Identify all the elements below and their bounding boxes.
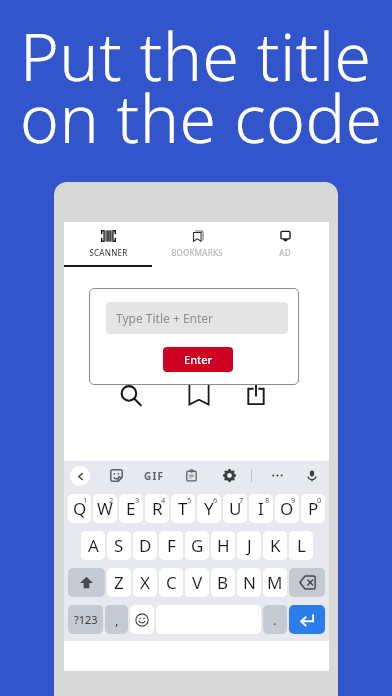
staticText: 5: [187, 495, 192, 505]
staticText: F: [167, 534, 176, 557]
staticText: Y: [204, 497, 214, 520]
staticText: E: [126, 497, 136, 520]
button[interactable]: W: [93, 494, 117, 523]
staticText: 0: [317, 495, 322, 505]
button[interactable]: M: [263, 568, 287, 597]
staticText: T: [178, 497, 188, 520]
button[interactable]: Stickers: [109, 468, 124, 483]
staticText: A: [88, 534, 99, 557]
staticText: AD: [279, 247, 291, 258]
staticText: S: [114, 534, 124, 557]
button[interactable]: H: [211, 531, 235, 560]
staticText: Put the title on the code: [20, 10, 383, 163]
button[interactable]: R: [145, 494, 169, 523]
button[interactable]: Z: [107, 568, 131, 597]
button[interactable]: Enter: [163, 347, 233, 372]
button[interactable]: K: [263, 531, 287, 560]
staticText: Z: [114, 571, 124, 594]
button[interactable]: X: [133, 568, 157, 597]
button[interactable]: Shift: [68, 568, 105, 597]
button[interactable]: N: [237, 568, 261, 597]
staticText: SCANNER: [89, 247, 128, 258]
button[interactable]: Enter: [289, 605, 325, 634]
button[interactable]: ,: [105, 605, 128, 634]
staticText: O: [280, 497, 294, 520]
button[interactable]: Voice input: [305, 469, 319, 483]
staticText: H: [217, 534, 230, 557]
staticText: D: [139, 534, 152, 557]
button[interactable]: V: [185, 568, 209, 597]
button[interactable]: F: [159, 531, 183, 560]
button[interactable]: SCANNER: [64, 222, 153, 267]
staticText: R: [152, 497, 163, 520]
staticText: W: [97, 497, 113, 520]
button[interactable]: Back: [70, 466, 90, 486]
button[interactable]: L: [289, 531, 313, 560]
button[interactable]: Q: [68, 494, 91, 523]
button[interactable]: Search: [118, 383, 144, 409]
button[interactable]: ?123: [68, 605, 103, 634]
staticText: I: [258, 497, 264, 520]
button[interactable]: Type Title + Enter: [106, 302, 288, 334]
button[interactable]: AD: [241, 222, 329, 267]
staticText: C: [166, 571, 177, 594]
staticText: Type Title + Enter: [116, 310, 214, 326]
staticText: U: [229, 497, 242, 520]
staticText: X: [140, 571, 150, 594]
staticText: ,: [115, 611, 119, 629]
button[interactable]: Share: [244, 383, 268, 407]
button[interactable]: Y: [197, 494, 221, 523]
button[interactable]: .: [263, 605, 287, 634]
staticText: GIF: [144, 469, 165, 483]
button[interactable]: BOOKMARKS: [153, 222, 241, 267]
button[interactable]: P: [301, 494, 325, 523]
staticText: 1: [83, 495, 88, 505]
staticText: J: [247, 534, 252, 557]
button[interactable]: C: [159, 568, 183, 597]
button[interactable]: B: [211, 568, 235, 597]
staticText: K: [270, 534, 281, 557]
button[interactable]: O: [275, 494, 299, 523]
staticText: ?123: [74, 612, 98, 627]
staticText: 2: [109, 495, 114, 505]
button[interactable]: Clipboard: [185, 469, 198, 482]
staticText: .: [273, 611, 277, 629]
button[interactable]: Backspace: [289, 568, 325, 597]
staticText: 9: [291, 495, 296, 505]
button[interactable]: Bookmark: [187, 383, 211, 407]
staticText: Enter: [184, 352, 213, 367]
button[interactable]: Emoji: [130, 605, 154, 634]
staticText: G: [191, 534, 204, 557]
staticText: P: [308, 497, 319, 520]
button[interactable]: A: [81, 531, 105, 560]
staticText: Q: [73, 497, 87, 520]
button[interactable]: Settings: [223, 469, 236, 482]
staticText: N: [243, 571, 256, 594]
button[interactable]: J: [237, 531, 261, 560]
button[interactable]: T: [171, 494, 195, 523]
button[interactable]: E: [119, 494, 143, 523]
button[interactable]: GIF: [144, 469, 165, 483]
button[interactable]: S: [107, 531, 131, 560]
button[interactable]: U: [223, 494, 247, 523]
staticText: 4: [161, 495, 166, 505]
staticText: M: [267, 571, 283, 594]
staticText: 6: [213, 495, 218, 505]
button[interactable]: G: [185, 531, 209, 560]
staticText: 7: [239, 495, 244, 505]
staticText: 3: [135, 495, 140, 505]
button[interactable]: D: [133, 531, 157, 560]
button[interactable]: More options: [271, 469, 284, 482]
staticText: B: [217, 571, 229, 594]
staticText: 8: [265, 495, 270, 505]
staticText: BOOKMARKS: [171, 247, 223, 258]
button[interactable]: I: [249, 494, 273, 523]
staticText: V: [192, 571, 203, 594]
staticText: L: [297, 534, 306, 557]
